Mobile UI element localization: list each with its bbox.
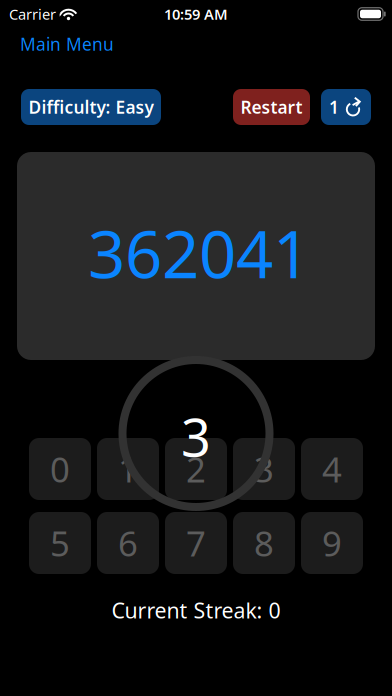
- staticText: 1: [329, 95, 339, 118]
- staticText: 4: [322, 446, 342, 492]
- staticText: 2: [186, 446, 206, 492]
- button[interactable]: Main Menu: [0, 24, 134, 63]
- button[interactable]: 8: [233, 512, 295, 574]
- button[interactable]: 7: [165, 512, 227, 574]
- staticText: Main Menu: [20, 32, 114, 55]
- staticText: 5: [50, 520, 70, 566]
- button[interactable]: Restart: [233, 89, 310, 125]
- button[interactable]: Difficulty: Easy: [21, 89, 161, 125]
- button[interactable]: 9: [301, 512, 363, 574]
- staticText: 3: [254, 446, 274, 492]
- button[interactable]: 5: [29, 512, 91, 574]
- button[interactable]: 6: [97, 512, 159, 574]
- staticText: 8: [254, 520, 274, 566]
- button[interactable]: 2: [165, 438, 227, 500]
- staticText: 7: [186, 520, 206, 566]
- button[interactable]: 4: [301, 438, 363, 500]
- button[interactable]: 0: [29, 438, 91, 500]
- button[interactable]: 1: [321, 89, 371, 125]
- staticText: 0: [50, 446, 70, 492]
- staticText: Restart: [240, 95, 302, 118]
- staticText: Carrier: [9, 4, 56, 24]
- staticText: 1: [118, 446, 138, 492]
- button[interactable]: 1: [97, 438, 159, 500]
- staticText: 9: [322, 520, 342, 566]
- staticText: 6: [118, 520, 138, 566]
- staticText: 10:59 AM: [164, 4, 228, 24]
- staticText: Current Streak: 0: [111, 596, 280, 624]
- button[interactable]: 3: [233, 438, 295, 500]
- staticText: Difficulty: Easy: [28, 95, 153, 118]
- staticText: 362041: [88, 210, 310, 296]
- staticText: 3: [181, 402, 211, 471]
